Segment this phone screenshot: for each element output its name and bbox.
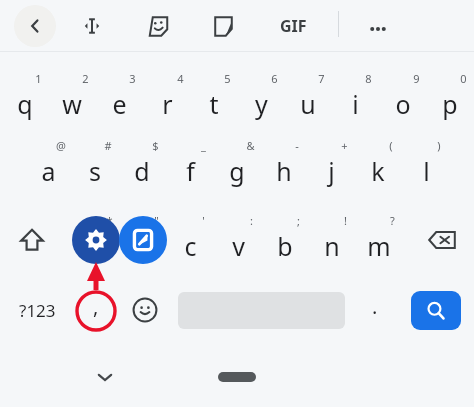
button[interactable] bbox=[356, 210, 402, 270]
staticText: ) bbox=[437, 138, 441, 153]
staticText: ( bbox=[389, 138, 393, 153]
staticText: t bbox=[209, 87, 219, 121]
staticText: g bbox=[229, 154, 245, 188]
staticText: GIF bbox=[280, 15, 307, 37]
staticText: * bbox=[106, 213, 113, 228]
staticText: l bbox=[423, 154, 430, 188]
button[interactable] bbox=[2, 68, 48, 128]
button[interactable] bbox=[309, 210, 355, 270]
button[interactable]: Emoji bbox=[122, 285, 168, 335]
staticText: s bbox=[89, 154, 101, 188]
button[interactable]: Hide keyboard bbox=[86, 358, 124, 396]
button[interactable] bbox=[25, 135, 71, 195]
button[interactable]: , bbox=[74, 285, 118, 335]
staticText: y bbox=[255, 87, 268, 121]
button[interactable] bbox=[380, 68, 426, 128]
staticText: n bbox=[324, 229, 340, 263]
button[interactable] bbox=[73, 210, 119, 270]
button[interactable]: Text editing bbox=[75, 9, 109, 43]
staticText: d bbox=[134, 154, 150, 188]
button[interactable] bbox=[191, 68, 237, 128]
staticText: & bbox=[246, 138, 255, 153]
staticText: @ bbox=[56, 138, 66, 153]
button[interactable]: Switch input method bbox=[119, 216, 167, 264]
staticText: i bbox=[352, 87, 359, 121]
staticText: 9 bbox=[413, 71, 420, 86]
button[interactable]: Shift bbox=[8, 212, 56, 268]
staticText: v bbox=[232, 229, 245, 263]
button[interactable] bbox=[332, 68, 378, 128]
staticText: $ bbox=[152, 138, 159, 153]
staticText: ; bbox=[297, 213, 300, 228]
button[interactable] bbox=[214, 135, 260, 195]
button[interactable]: ?123 bbox=[6, 285, 68, 335]
button[interactable] bbox=[215, 210, 261, 270]
staticText: 4 bbox=[177, 71, 184, 86]
staticText: z bbox=[90, 229, 102, 263]
staticText: + bbox=[341, 138, 348, 153]
staticText: ?123 bbox=[19, 299, 56, 322]
staticText: p bbox=[442, 87, 458, 121]
staticText: q bbox=[17, 87, 33, 121]
button[interactable] bbox=[285, 68, 331, 128]
button[interactable] bbox=[72, 135, 118, 195]
button[interactable]: Home bbox=[218, 372, 256, 382]
button[interactable] bbox=[308, 135, 354, 195]
button[interactable] bbox=[262, 210, 308, 270]
button[interactable] bbox=[120, 210, 166, 270]
staticText: ' bbox=[202, 213, 205, 228]
staticText: w bbox=[62, 87, 82, 121]
staticText: b bbox=[277, 229, 293, 263]
button[interactable] bbox=[261, 135, 307, 195]
staticText: 1 bbox=[35, 71, 42, 86]
button[interactable]: More options bbox=[358, 9, 398, 49]
staticText: 0 bbox=[460, 71, 467, 86]
button[interactable] bbox=[403, 135, 449, 195]
button[interactable]: GIF bbox=[268, 9, 318, 43]
button[interactable] bbox=[167, 135, 213, 195]
staticText: h bbox=[276, 154, 292, 188]
staticText: u bbox=[300, 87, 316, 121]
staticText: , bbox=[93, 293, 99, 320]
staticText: c bbox=[184, 229, 197, 263]
staticText: ! bbox=[344, 213, 347, 228]
staticText: 2 bbox=[82, 71, 89, 86]
staticText: j bbox=[328, 154, 335, 188]
staticText: 7 bbox=[318, 71, 325, 86]
button[interactable] bbox=[427, 68, 473, 128]
button[interactable]: Settings bbox=[72, 216, 120, 264]
staticText: 6 bbox=[271, 71, 278, 86]
button[interactable] bbox=[238, 68, 284, 128]
staticText: _ bbox=[201, 138, 206, 153]
button[interactable]: Stickers bbox=[141, 9, 175, 43]
staticText: : bbox=[250, 213, 253, 228]
button[interactable] bbox=[96, 68, 142, 128]
staticText: " bbox=[154, 213, 159, 228]
staticText: o bbox=[395, 87, 411, 121]
staticText: ? bbox=[390, 213, 395, 228]
button[interactable]: Notes bbox=[206, 9, 240, 43]
staticText: m bbox=[367, 229, 391, 263]
button[interactable] bbox=[355, 135, 401, 195]
button[interactable] bbox=[167, 210, 213, 270]
staticText: # bbox=[104, 138, 112, 153]
staticText: k bbox=[371, 154, 385, 188]
button[interactable] bbox=[49, 68, 95, 128]
staticText: - bbox=[295, 138, 299, 153]
button[interactable]: Search bbox=[411, 291, 461, 330]
staticText: 8 bbox=[365, 71, 372, 86]
staticText: e bbox=[112, 87, 127, 121]
staticText: x bbox=[136, 229, 150, 263]
staticText: r bbox=[162, 87, 173, 121]
button[interactable]: Back bbox=[14, 5, 56, 47]
staticText: f bbox=[186, 154, 195, 188]
button[interactable]: . bbox=[354, 285, 396, 335]
button[interactable]: Backspace bbox=[418, 212, 466, 268]
staticText: a bbox=[41, 154, 56, 188]
staticText: 5 bbox=[224, 71, 231, 86]
button[interactable] bbox=[144, 68, 190, 128]
staticText: 3 bbox=[129, 71, 136, 86]
button[interactable] bbox=[119, 135, 165, 195]
staticText: . bbox=[372, 293, 378, 320]
